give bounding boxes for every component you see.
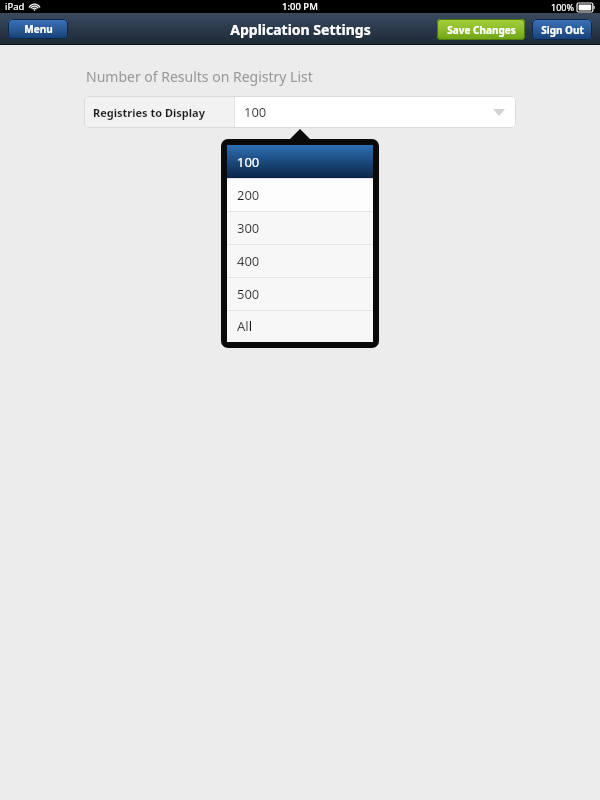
staticText: iPad — [5, 0, 25, 13]
staticText: 1:00 PM — [282, 0, 318, 13]
button[interactable]: 500 — [227, 277, 373, 310]
button[interactable]: 300 — [227, 211, 373, 244]
button[interactable]: 100 — [227, 145, 373, 178]
button[interactable]: All — [227, 310, 373, 342]
staticText: Number of Results on Registry List — [86, 67, 313, 86]
staticText: Application Settings — [230, 20, 371, 39]
staticText: 200 — [237, 186, 260, 204]
staticText: 100 — [244, 103, 267, 121]
staticText: Sign Out — [541, 23, 584, 37]
staticText: 500 — [237, 285, 260, 303]
staticText: Registries to Display — [93, 105, 205, 120]
button[interactable]: 400 — [227, 244, 373, 277]
staticText: 100% — [551, 1, 574, 13]
button[interactable]: Menu — [8, 19, 68, 39]
staticText: Menu — [24, 22, 53, 36]
staticText: 100 — [237, 153, 260, 171]
button[interactable]: Sign Out — [532, 19, 592, 40]
staticText: 400 — [237, 252, 260, 270]
staticText: All — [237, 317, 253, 335]
staticText: Save Changes — [447, 23, 516, 37]
button[interactable]: Save Changes — [437, 19, 525, 40]
button[interactable]: 200 — [227, 178, 373, 211]
staticText: 300 — [237, 219, 260, 237]
button[interactable]: Registries to Display — [84, 96, 516, 128]
